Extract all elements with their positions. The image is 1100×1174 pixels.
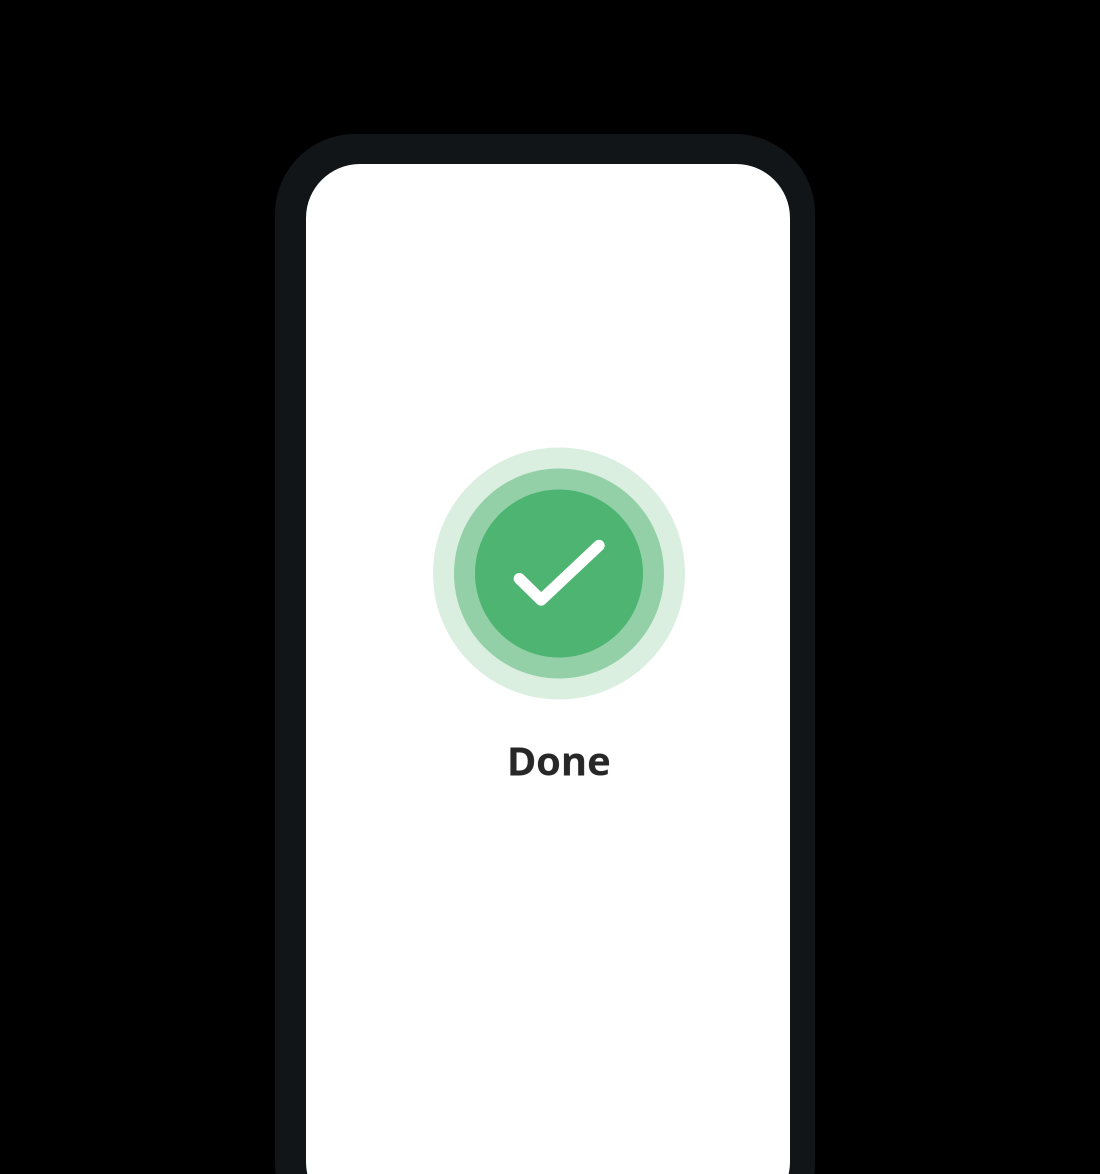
button[interactable]: Done [433, 447, 685, 783]
staticText: Done [507, 733, 611, 786]
